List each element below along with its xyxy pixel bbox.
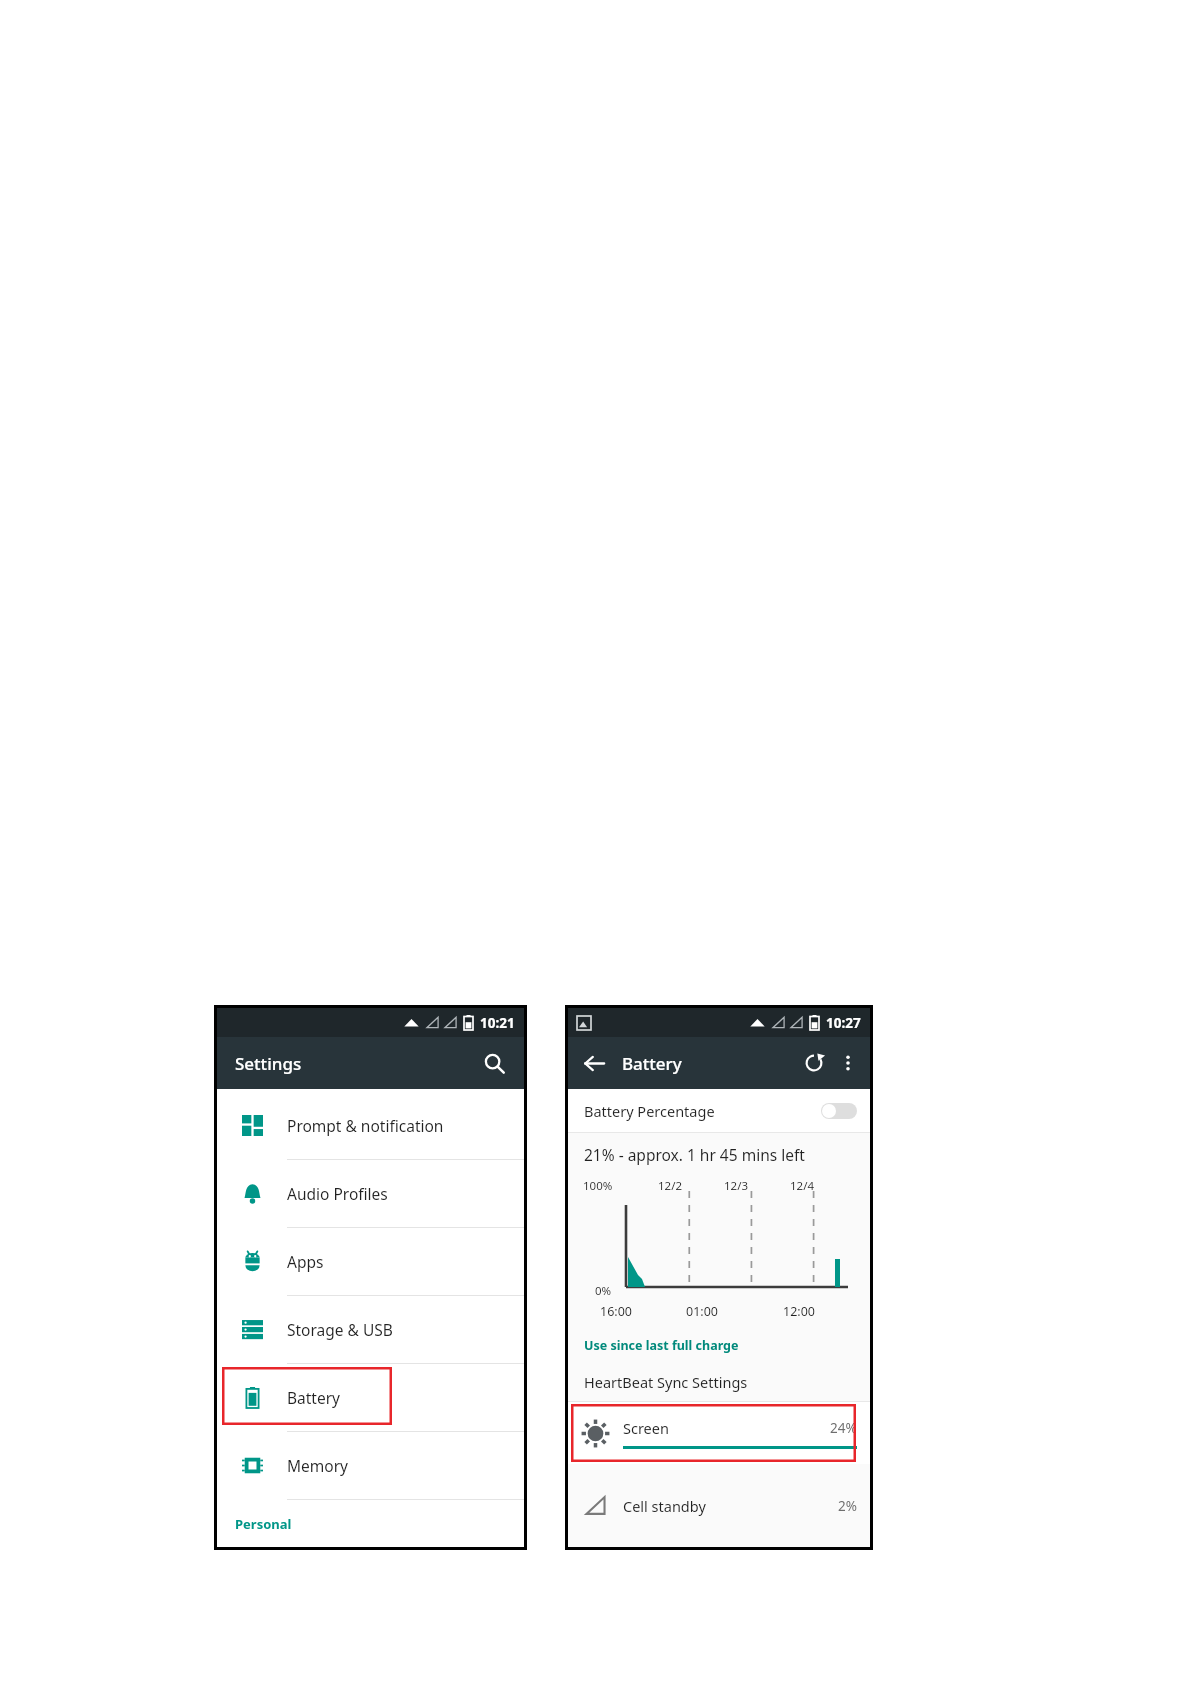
staticText: 10:21	[480, 1014, 515, 1032]
staticText: 24%	[830, 1419, 857, 1437]
staticText: Use since last full charge	[584, 1337, 739, 1354]
staticText: 0%	[595, 1283, 612, 1299]
button[interactable]: Storage & USB	[217, 1296, 524, 1364]
button[interactable]: Screen	[568, 1402, 870, 1464]
button[interactable]: HeartBeat Sync Settings	[568, 1363, 870, 1401]
button[interactable]: Apps	[217, 1228, 524, 1296]
staticText: Battery	[287, 1387, 341, 1408]
button[interactable]: Prompt & notification	[217, 1092, 524, 1160]
button[interactable]: Back	[576, 1045, 612, 1081]
staticText: 21% - approx. 1 hr 45 mins left	[584, 1144, 805, 1165]
button[interactable]: Use since last full charge	[568, 1327, 870, 1363]
staticText: 16:00	[600, 1303, 632, 1320]
staticText: 12/3	[724, 1178, 749, 1194]
button[interactable]: Audio Profiles	[217, 1160, 524, 1228]
staticText: 100%	[583, 1178, 613, 1194]
staticText: Storage & USB	[287, 1319, 393, 1340]
staticText: Apps	[287, 1251, 324, 1272]
staticText: Settings	[235, 1052, 302, 1075]
staticText: Personal	[235, 1515, 292, 1533]
staticText: Battery Percentage	[584, 1101, 715, 1121]
button[interactable]: More options	[833, 1048, 863, 1078]
staticText: 12/2	[658, 1178, 683, 1194]
button[interactable]: Cell standby	[568, 1464, 870, 1547]
button[interactable]: Battery	[217, 1364, 524, 1432]
button[interactable]: Search	[477, 1046, 511, 1080]
button[interactable]: Memory	[217, 1432, 524, 1500]
staticText: 12:00	[783, 1303, 815, 1320]
staticText: Prompt & notification	[287, 1115, 444, 1136]
staticText: Memory	[287, 1455, 348, 1476]
staticText: 01:00	[686, 1303, 718, 1320]
button[interactable]: Battery Percentage	[568, 1089, 870, 1132]
staticText: Cell standby	[623, 1496, 706, 1516]
button[interactable]: Refresh	[797, 1046, 831, 1080]
staticText: 2%	[838, 1497, 857, 1515]
staticText: Battery	[622, 1052, 682, 1075]
staticText: Screen	[623, 1418, 669, 1438]
staticText: HeartBeat Sync Settings	[584, 1372, 748, 1392]
staticText: 12/4	[790, 1178, 815, 1194]
staticText: Audio Profiles	[287, 1183, 388, 1204]
staticText: 10:27	[826, 1014, 861, 1032]
